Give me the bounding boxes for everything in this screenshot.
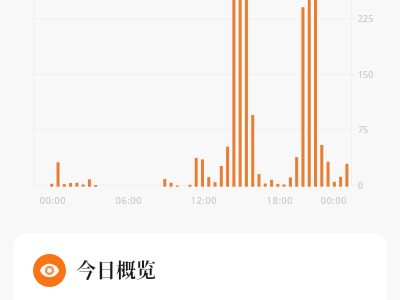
staticText: 00:00: [36, 194, 70, 206]
button[interactable]: 今日概览: [14, 233, 387, 300]
staticText: 06:00: [112, 194, 146, 206]
staticText: 12:00: [187, 194, 221, 206]
staticText: 今日概览: [76, 255, 156, 284]
staticText: 0: [358, 180, 364, 192]
staticText: 225: [358, 13, 374, 25]
staticText: 00:00: [317, 194, 351, 206]
staticText: 150: [358, 69, 374, 81]
staticText: 18:00: [263, 194, 297, 206]
staticText: 75: [358, 124, 369, 136]
